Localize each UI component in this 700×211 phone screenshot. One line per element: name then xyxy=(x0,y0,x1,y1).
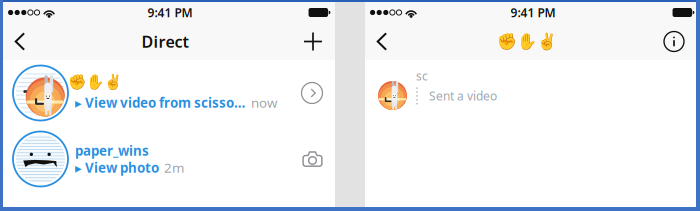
staticText: now xyxy=(251,94,277,111)
staticText: paper_wins xyxy=(75,142,149,159)
staticText: sc xyxy=(416,68,428,84)
button[interactable]: ✊✋✌️ xyxy=(3,60,335,126)
button[interactable]: New message xyxy=(297,24,329,58)
button[interactable]: paper_wins xyxy=(3,126,335,192)
staticText: ✊✋✌️ xyxy=(68,73,122,90)
staticText: Sent a video xyxy=(429,88,497,104)
staticText: Direct xyxy=(141,31,188,52)
staticText: 9:41 PM xyxy=(147,4,192,20)
staticText: 2m xyxy=(164,159,184,176)
button[interactable]: Conversation info xyxy=(658,24,690,58)
button[interactable]: Back xyxy=(369,24,395,58)
staticText: ▸ View video from scisso… xyxy=(75,94,245,111)
staticText: 9:41 PM xyxy=(510,4,555,20)
staticText: ▸ View photo xyxy=(75,159,159,176)
button[interactable]: Back xyxy=(7,24,33,58)
staticText: ✊✋✌️ xyxy=(496,32,556,51)
